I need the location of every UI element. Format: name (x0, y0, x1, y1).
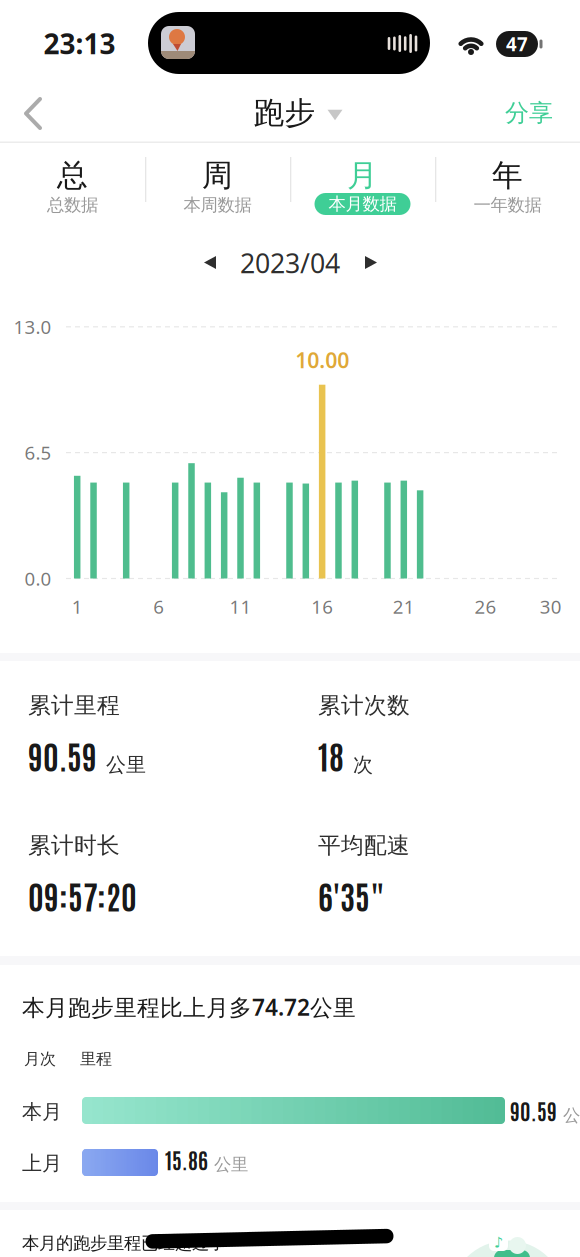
staticText: 30 (540, 594, 562, 619)
staticText: 13.0 (13, 314, 51, 339)
button[interactable]: 总 (0, 148, 145, 220)
staticText: 本月 (22, 1099, 62, 1124)
staticText: 月次 (24, 1049, 56, 1069)
staticText: ♪ (494, 1234, 503, 1251)
staticText: 47 (506, 32, 528, 56)
staticText: 6'35" (318, 874, 385, 916)
button[interactable] (14, 93, 62, 135)
staticText: 10.00 (295, 346, 349, 374)
staticText: 本月的跑步里程已经超过了 (22, 1232, 226, 1254)
staticText: 累计里程 (28, 691, 120, 719)
staticText: 周 (202, 157, 233, 194)
button[interactable]: 月 (290, 148, 435, 220)
staticText: 公里 (106, 752, 146, 777)
staticText: 次 (353, 752, 373, 777)
button[interactable]: 跑步 (253, 94, 342, 132)
staticText: 6 (153, 594, 164, 619)
staticText: 上月 (22, 1151, 62, 1176)
staticText: 1 (72, 594, 83, 619)
staticText: 18 (318, 734, 344, 776)
staticText: 16 (311, 594, 333, 619)
staticText: 26 (474, 594, 496, 619)
button[interactable]: 分享 (505, 98, 553, 128)
staticText: 里程 (80, 1049, 112, 1069)
staticText: 分享 (505, 98, 553, 128)
staticText: 总数据 (47, 194, 98, 216)
staticText: 21 (393, 594, 415, 619)
staticText: 累计次数 (318, 691, 410, 719)
staticText: 09:57:20 (28, 874, 137, 916)
staticText: 0.0 (24, 566, 51, 591)
button[interactable]: 周 (145, 148, 290, 220)
staticText: 累计时长 (28, 831, 120, 859)
staticText: 本周数据 (183, 194, 251, 216)
button[interactable]: 年 (435, 148, 580, 220)
staticText: 一年数据 (473, 194, 541, 216)
staticText: 本月数据 (328, 193, 396, 215)
staticText: 11 (229, 594, 251, 619)
staticText: 6.5 (24, 440, 51, 465)
staticText: 公里 (214, 1154, 248, 1175)
staticText: 年 (492, 157, 523, 194)
staticText: 15.86 (165, 1145, 208, 1173)
staticText: 本月跑步里程比上月多74.72公里 (22, 992, 356, 1022)
staticText: 月 (347, 157, 378, 194)
staticText: 23:13 (43, 25, 115, 62)
staticText: 总 (57, 157, 88, 194)
staticText: 公里 (563, 1105, 580, 1126)
button[interactable] (204, 256, 216, 269)
staticText: 平均配速 (318, 831, 410, 859)
staticText: 90.59 (510, 1096, 557, 1124)
button[interactable] (365, 256, 377, 269)
staticText: 90.59 (28, 734, 97, 776)
staticText: 2023/04 (240, 245, 340, 281)
staticText: 跑步 (253, 94, 315, 132)
